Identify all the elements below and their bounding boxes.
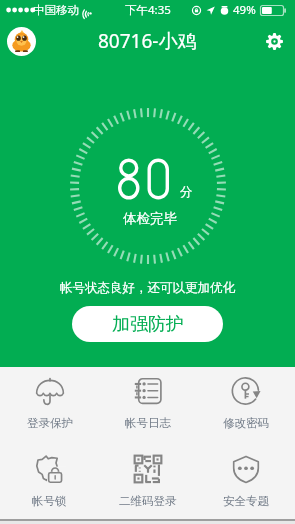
button[interactable]: 安全专题 bbox=[197, 445, 295, 523]
button[interactable]: Profile avatar bbox=[7, 27, 36, 56]
staticText: 安全专题 bbox=[223, 494, 269, 508]
button[interactable]: 帐号锁 bbox=[0, 445, 99, 523]
staticText: 帐号状态良好，还可以更加优化 bbox=[0, 280, 295, 296]
button[interactable]: 登录保护 bbox=[0, 367, 99, 445]
staticText: 80716-小鸡 bbox=[98, 28, 197, 54]
staticText: 修改密码 bbox=[223, 416, 269, 430]
button[interactable]: Settings bbox=[262, 29, 286, 53]
staticText: 体检完毕 bbox=[123, 210, 177, 227]
button[interactable]: 帐号日志 bbox=[99, 367, 197, 445]
staticText: 二维码登录 bbox=[119, 494, 177, 508]
button[interactable]: 二维码登录 bbox=[99, 445, 197, 523]
button[interactable]: 加强防护 bbox=[72, 306, 223, 342]
staticText: 加强防护 bbox=[112, 313, 184, 336]
staticText: 中国移动 bbox=[33, 3, 79, 17]
staticText: 分 bbox=[180, 184, 193, 200]
staticText: 49% bbox=[233, 2, 256, 18]
button[interactable]: 修改密码 bbox=[197, 367, 295, 445]
staticText: 登录保护 bbox=[27, 416, 73, 430]
staticText: 帐号锁 bbox=[32, 494, 67, 508]
staticText: 帐号日志 bbox=[125, 416, 171, 430]
staticText: 下午4:35 bbox=[125, 2, 171, 18]
